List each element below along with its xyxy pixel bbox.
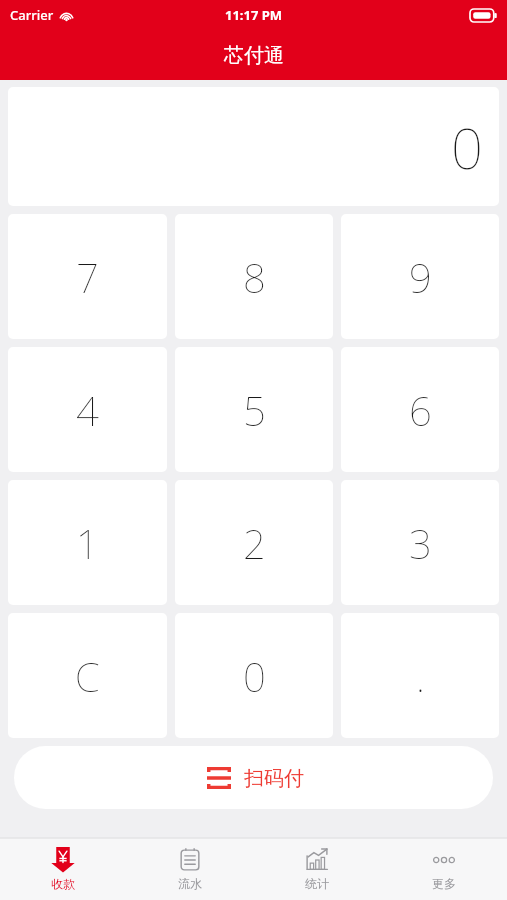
staticText: 7 <box>76 250 99 304</box>
button[interactable]: 统计 <box>253 838 380 900</box>
staticText: 11:17 PM <box>225 6 283 24</box>
button[interactable]: 7 <box>8 214 167 339</box>
staticText: 2 <box>243 516 266 570</box>
staticText: 3 <box>409 516 432 570</box>
button[interactable]: C <box>8 613 167 738</box>
button[interactable]: 9 <box>341 214 499 339</box>
button[interactable]: 0 <box>175 613 333 738</box>
button[interactable]: 4 <box>8 347 167 472</box>
staticText: 5 <box>243 383 266 437</box>
staticText: 统计 <box>305 876 329 891</box>
button[interactable]: 流水 <box>126 838 253 900</box>
staticText: C <box>75 649 100 703</box>
button[interactable]: 2 <box>175 480 333 605</box>
staticText: 流水 <box>178 876 202 891</box>
staticText: 8 <box>243 250 266 304</box>
staticText: 更多 <box>432 876 456 891</box>
button[interactable]: 更多 <box>380 838 507 900</box>
staticText: 9 <box>409 250 432 304</box>
button[interactable]: 6 <box>341 347 499 472</box>
staticText: 1 <box>76 516 99 570</box>
staticText: 0 <box>451 109 483 185</box>
other: 扫码付 <box>204 763 234 793</box>
button[interactable]: 1 <box>8 480 167 605</box>
staticText: 6 <box>409 383 432 437</box>
staticText: 4 <box>76 383 99 437</box>
button[interactable]: 0 <box>8 87 499 206</box>
button[interactable]: 8 <box>175 214 333 339</box>
staticText: 0 <box>243 649 266 703</box>
button[interactable]: 收款 <box>0 838 126 900</box>
button[interactable]: 5 <box>175 347 333 472</box>
staticText: 扫码付 <box>244 766 304 791</box>
button[interactable]: 3 <box>341 480 499 605</box>
button[interactable]: 扫码付 <box>14 746 493 809</box>
staticText: Carrier <box>10 6 54 24</box>
staticText: . <box>416 649 425 703</box>
staticText: 收款 <box>51 876 75 891</box>
staticText: 芯付通 <box>224 43 284 68</box>
